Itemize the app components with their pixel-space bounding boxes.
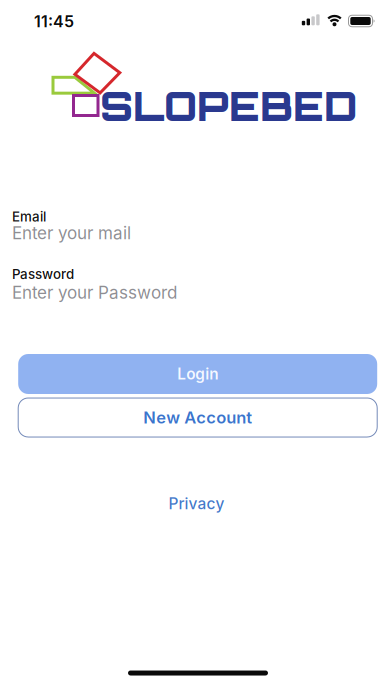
staticText: 11:45 [34,12,74,31]
button[interactable]: Password [8,264,384,310]
button[interactable]: New Account [18,398,377,437]
staticText: New Account [143,407,252,427]
staticText: Login [177,365,218,383]
staticText: Privacy [168,494,224,513]
staticText: Email [12,208,46,225]
button[interactable]: Privacy [168,494,224,513]
staticText: Password [12,266,74,282]
staticText: Enter your Password [12,282,177,303]
button[interactable]: Login [18,354,377,394]
button[interactable]: Email [8,206,384,252]
staticText: SLOPEBED [100,80,357,131]
staticText: Enter your mail [12,223,131,243]
